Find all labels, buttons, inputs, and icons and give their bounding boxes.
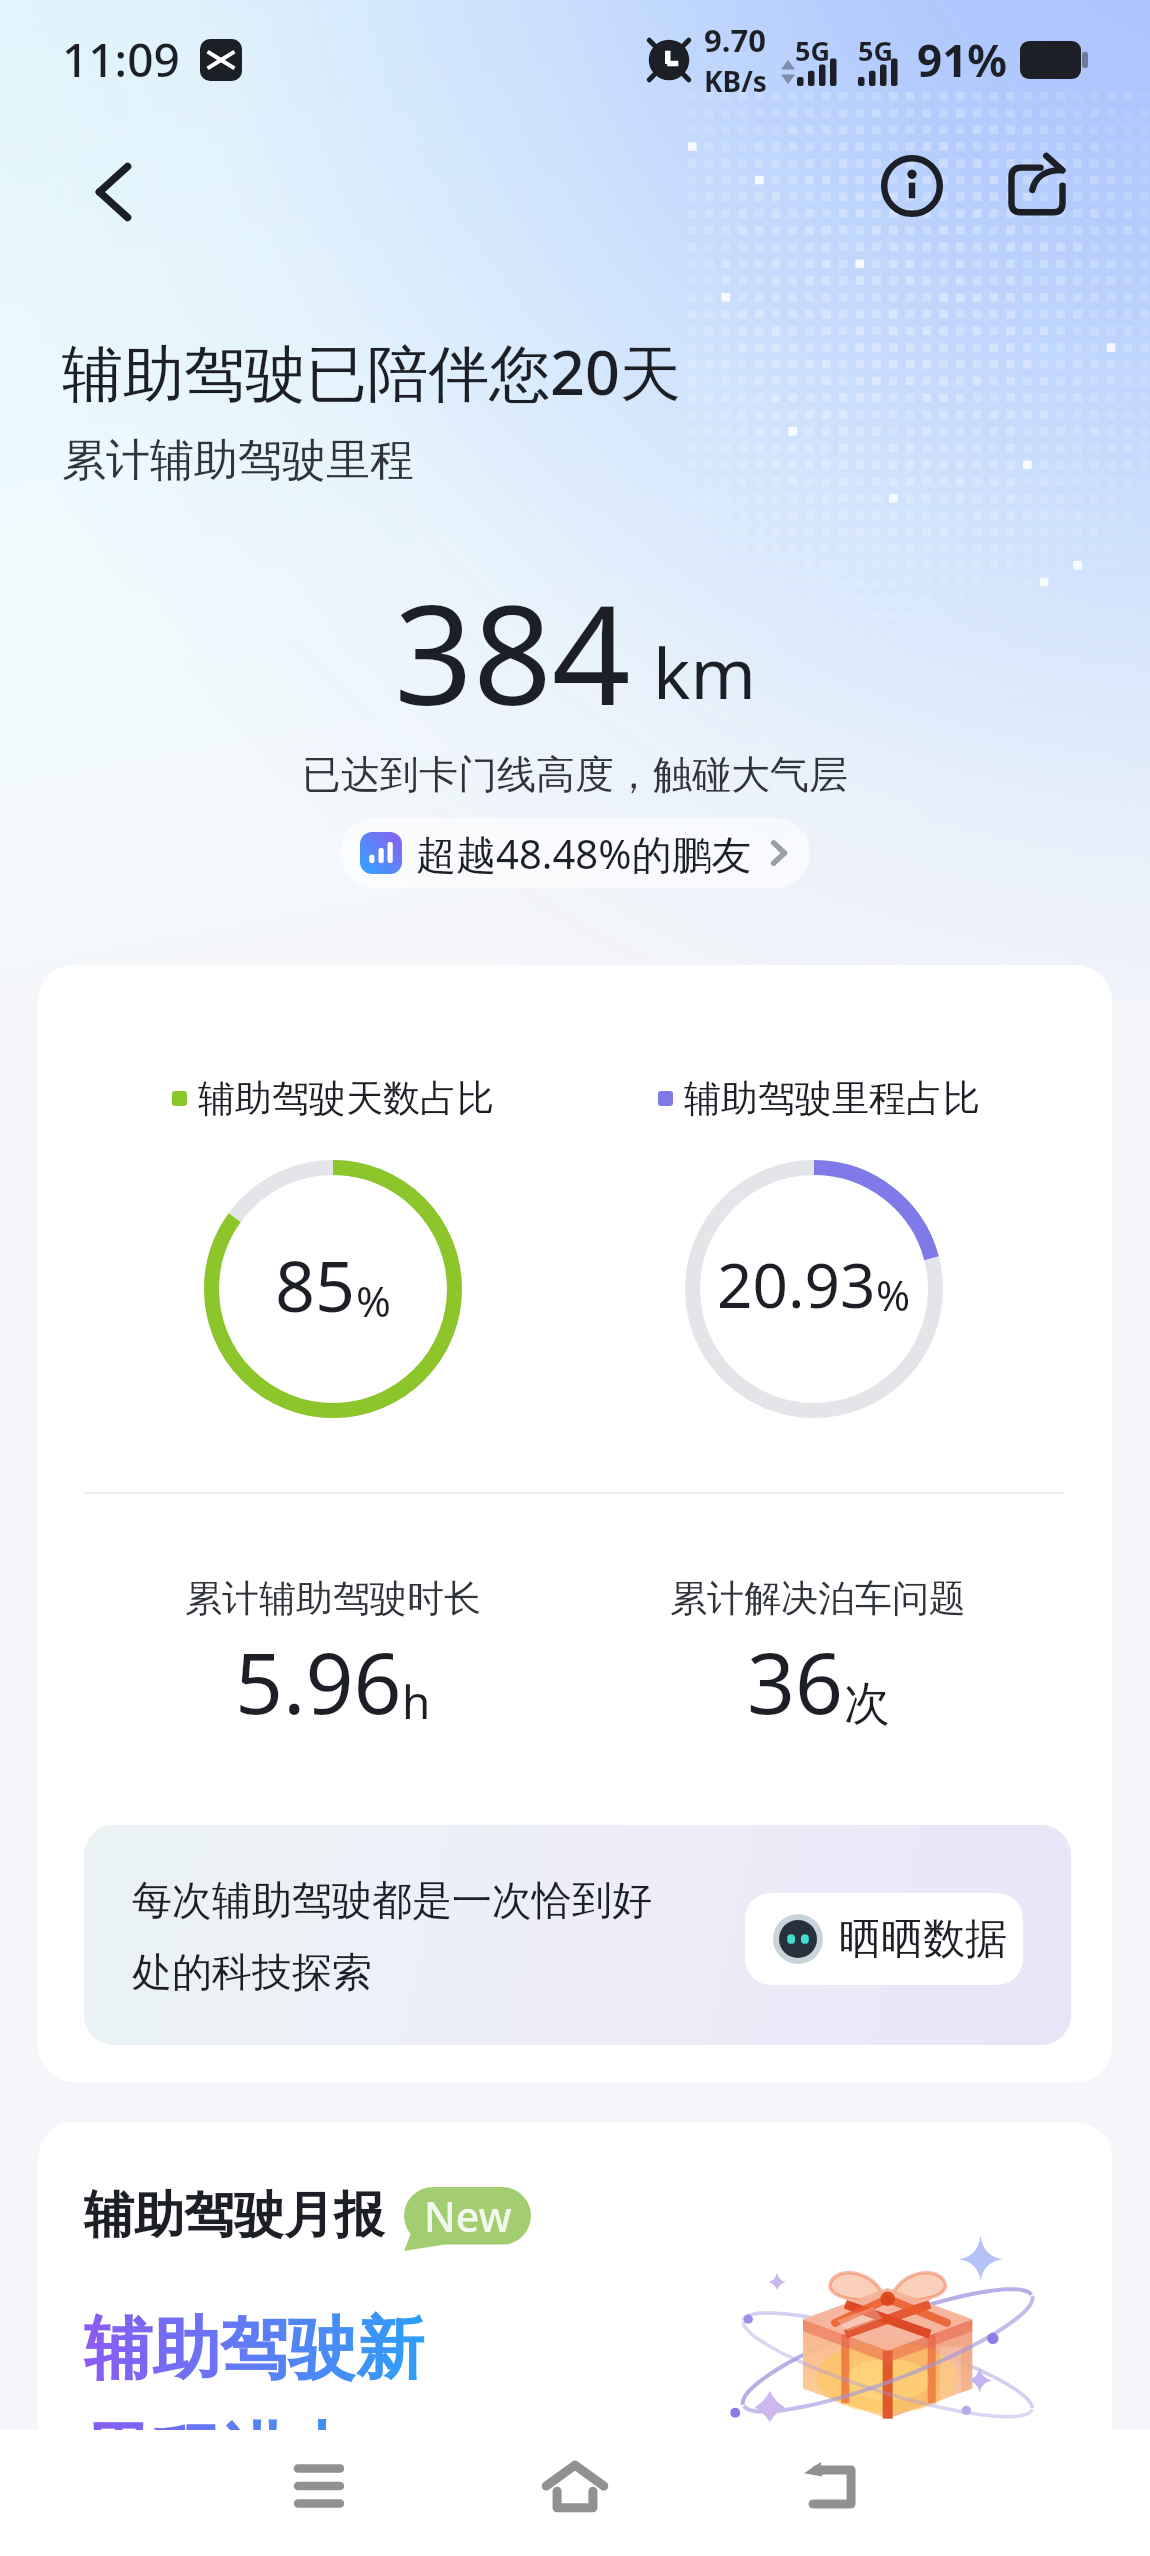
staticText: 里程进击 (84, 2413, 356, 2499)
staticText: % (876, 1267, 911, 1323)
staticText: 超越48.48%的鹏友 (416, 826, 752, 881)
button[interactable]: Info (866, 140, 957, 231)
staticText: 处的科技探索 (132, 1947, 372, 1997)
staticText: h (402, 1670, 431, 1733)
staticText: 5G (795, 32, 830, 69)
button[interactable]: Share (991, 139, 1082, 230)
staticText: 91% (917, 30, 1008, 90)
button[interactable]: Back (772, 2426, 892, 2546)
button[interactable]: Recent apps (259, 2426, 379, 2546)
staticText: 36 (747, 1624, 844, 1738)
staticText: 5.96 (235, 1624, 402, 1738)
staticText: 辅助驾驶月报 (84, 2184, 384, 2247)
staticText: % (356, 1272, 391, 1329)
button[interactable]: Back (68, 147, 158, 237)
staticText: 每次辅助驾驶都是一次恰到好 (132, 1875, 652, 1925)
staticText: New (424, 2188, 512, 2244)
staticText: 辅助驾驶天数占比 (198, 1075, 494, 1122)
button[interactable]: 晒晒数据 (745, 1893, 1023, 1985)
button[interactable]: Home (515, 2426, 635, 2546)
staticText: 9.70 (704, 19, 766, 61)
staticText: 辅助驾驶里程占比 (684, 1075, 980, 1122)
staticText: 晒晒数据 (839, 1913, 1007, 1966)
staticText: 累计解决泊车问题 (670, 1575, 966, 1622)
staticText: KB/s (704, 62, 767, 100)
button[interactable]: 超越48.48%的鹏友 (340, 818, 810, 888)
staticText: 累计辅助驾驶里程 (62, 433, 414, 488)
staticText: 已达到卡门线高度，触碰大气层 (0, 750, 1150, 799)
staticText: 20.93 (717, 1242, 876, 1326)
staticText: 5G (858, 32, 893, 69)
staticText: 85 (275, 1237, 356, 1332)
staticText: 384 (394, 557, 631, 745)
staticText: 累计辅助驾驶时长 (185, 1575, 481, 1622)
staticText: km (653, 624, 756, 719)
staticText: 11:09 (62, 28, 180, 91)
staticText: 次 (844, 1675, 890, 1733)
staticText: 辅助驾驶已陪伴您20天 (62, 330, 681, 413)
button[interactable]: 辅助驾驶月报 (38, 2122, 1112, 2556)
staticText: 辅助驾驶新 (84, 2307, 424, 2393)
